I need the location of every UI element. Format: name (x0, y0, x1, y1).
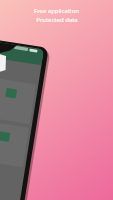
staticText: Protected data (36, 16, 78, 24)
staticText: Free application (34, 7, 79, 15)
